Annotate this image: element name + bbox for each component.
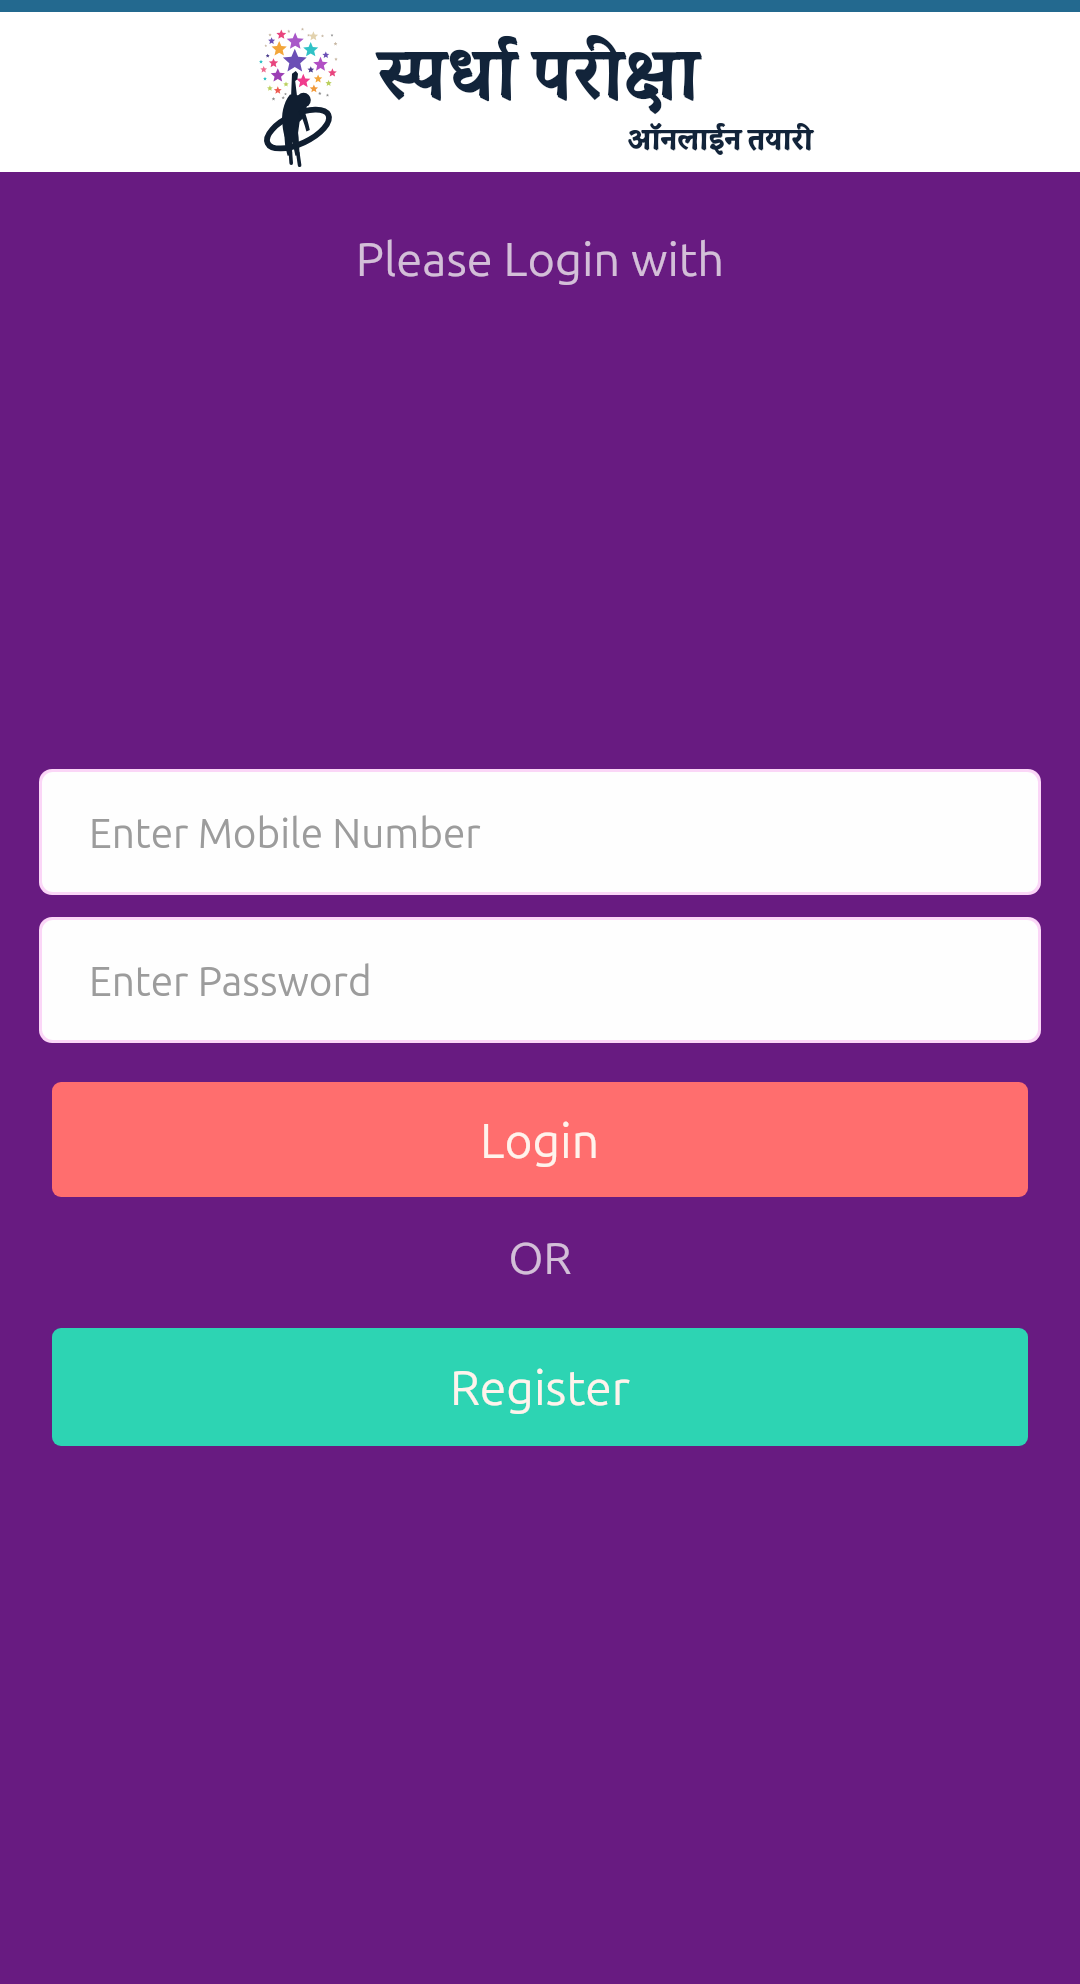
staticText: स्पर्धा परीक्षा xyxy=(378,16,701,129)
staticText: OR xyxy=(0,1232,1080,1282)
button[interactable]: Register xyxy=(52,1328,1028,1446)
button[interactable]: Login xyxy=(52,1082,1028,1197)
staticText: ऑनलाईन तयारी xyxy=(627,114,813,161)
other: Spardha Pariksha logo xyxy=(248,21,348,171)
staticText: ऑनलाईन तयारी xyxy=(628,114,814,161)
staticText: ऑनलाईन तयारी xyxy=(627,115,813,162)
staticText: स्पर्धा परीक्षा xyxy=(378,14,701,127)
staticText: Enter Mobile Number xyxy=(89,810,481,855)
staticText: Login xyxy=(480,1113,600,1167)
staticText: स्पर्धा परीक्षा xyxy=(377,14,700,127)
staticText: Register xyxy=(450,1360,630,1414)
staticText: Please Login with xyxy=(0,232,1080,285)
button[interactable]: Enter Mobile Number xyxy=(42,772,1038,892)
staticText: Enter Password xyxy=(89,958,372,1003)
button[interactable]: Enter Password xyxy=(42,920,1038,1040)
